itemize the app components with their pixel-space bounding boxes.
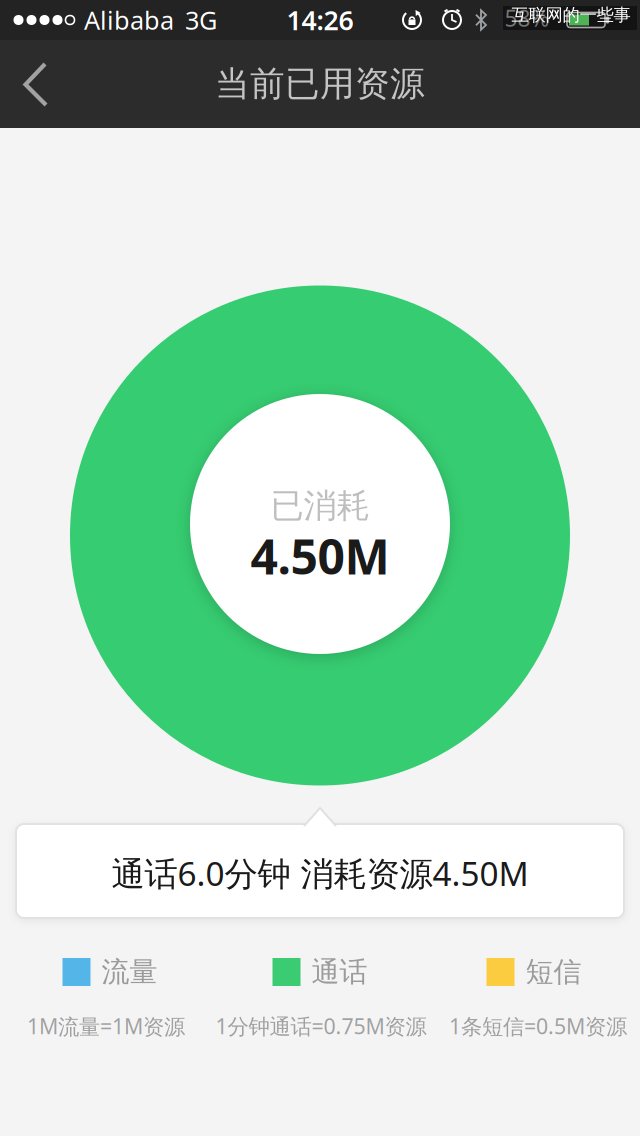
staticText: 3G [185, 3, 217, 37]
staticText: 通话6.0分钟 消耗资源4.50M [111, 851, 528, 895]
staticText: 1M流量=1M资源 [27, 1012, 185, 1040]
staticText: 流量 [101, 955, 157, 989]
staticText: 短信 [525, 955, 581, 989]
staticText: 通话 [311, 955, 367, 989]
staticText: 14:26 [286, 2, 353, 38]
staticText: Alibaba [84, 3, 174, 37]
staticText: 1条短信=0.5M资源 [449, 1012, 627, 1040]
staticText: 当前已用资源 [215, 63, 425, 105]
button[interactable]: Back [4, 44, 80, 124]
staticText: 互联网的一些事 [511, 4, 630, 26]
staticText: 4.50M [250, 524, 389, 588]
staticText: 58% [504, 3, 549, 33]
staticText: 1分钟通话=0.75M资源 [215, 1012, 426, 1040]
staticText: 已消耗 [270, 485, 369, 526]
